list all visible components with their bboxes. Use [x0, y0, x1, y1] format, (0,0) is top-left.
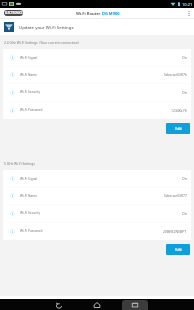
button[interactable]: Update your Wi-Fi Settings — [0, 19, 194, 35]
button[interactable]: Home — [78, 299, 116, 310]
staticText: ELECTRONICS — [5, 11, 23, 15]
button[interactable]: Wi-Fi Security — [3, 204, 191, 222]
staticText: DG M900 — [102, 11, 120, 16]
staticText: On — [182, 90, 187, 95]
button[interactable]: Brand logo — [4, 10, 23, 16]
staticText: 5 GHz Wi-Fi Settings — [4, 161, 35, 165]
staticText: Edit — [175, 247, 182, 252]
staticText: Wi-Fi Password — [20, 108, 43, 112]
button[interactable]: More options — [184, 8, 194, 18]
button[interactable]: Wi-Fi Signal — [3, 170, 191, 187]
staticText: Wi-Fi Signal — [20, 177, 38, 181]
staticText: On — [182, 176, 187, 181]
staticText: Edit — [175, 126, 182, 131]
staticText: Wi-Fi Security — [20, 90, 41, 94]
staticText: Wi-Fi Router — [76, 11, 102, 16]
button[interactable]: Wi-Fi Security — [3, 83, 191, 101]
staticText: Wi-Fi Password — [20, 229, 43, 233]
staticText: Wi-Fi Security — [20, 211, 41, 215]
staticText: Wi-Fi Name — [20, 73, 38, 77]
button[interactable]: Wi-Fi Signal — [3, 49, 191, 66]
staticText: Wi-Fi Signal — [20, 56, 38, 60]
button[interactable]: Wi-Fi Name — [3, 66, 191, 83]
staticText: 1234Ke76 — [171, 108, 187, 113]
staticText: Sdecuse0387k — [164, 72, 187, 77]
button[interactable]: Wi-Fi Password — [3, 101, 191, 119]
staticText: Wi-Fi Name — [20, 194, 38, 198]
button[interactable]: Edit — [166, 123, 190, 134]
staticText: On — [182, 55, 187, 60]
staticText: 10:21 — [182, 2, 193, 7]
button[interactable]: Wi-Fi Password — [3, 222, 191, 240]
staticText: Update your Wi-Fi Settings — [19, 24, 74, 30]
button[interactable]: Edit — [166, 244, 190, 255]
staticText: 2.4 GHz Wi-Fi Settings (Your current con… — [4, 40, 79, 44]
staticText: Sdecuse03877 — [164, 193, 187, 198]
staticText: On — [182, 211, 187, 216]
button[interactable]: Recent apps — [122, 300, 148, 310]
staticText: 20BHE2N5BPT — [163, 229, 187, 234]
button[interactable]: Back — [40, 299, 78, 310]
button[interactable]: Wi-Fi Name — [3, 187, 191, 204]
